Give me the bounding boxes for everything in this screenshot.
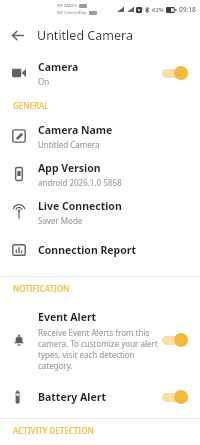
staticText: Battery Alert (38, 390, 106, 404)
staticText: Event Alert (38, 310, 97, 324)
button[interactable]: Battery Alert (0, 380, 200, 414)
staticText: App Version (38, 161, 101, 175)
button[interactable]: Toggle (162, 66, 188, 80)
button[interactable]: Camera (0, 52, 200, 94)
staticText: Saver Mode (38, 215, 83, 226)
staticText: On (38, 76, 50, 87)
button[interactable]: App Version (0, 155, 200, 193)
staticText: GENERAL (13, 100, 49, 111)
staticText: 09:18 (179, 5, 196, 14)
button[interactable]: Back (0, 18, 34, 52)
button[interactable]: Event Alert (0, 300, 200, 380)
staticText: NOTIFICATION (13, 283, 70, 294)
staticText: MY CelcomDigi (57, 10, 87, 16)
button[interactable]: Toggle (162, 390, 188, 404)
button[interactable]: Live Connection (0, 193, 200, 231)
staticText: MY MAXIS (57, 3, 77, 9)
button[interactable]: Toggle (162, 333, 188, 347)
staticText: Camera Name (38, 123, 113, 137)
staticText: Receive Event Alerts from this camera. T… (38, 327, 158, 371)
staticText: Untitled Camera (37, 27, 133, 44)
staticText: android 2026.1.0 5868 (38, 177, 122, 188)
staticText: Live Connection (38, 199, 122, 213)
staticText: 62% (152, 6, 164, 14)
staticText: ACTIVITY DETECTION (13, 425, 94, 436)
button[interactable]: Connection Report (0, 231, 200, 269)
staticText: Connection Report (38, 243, 137, 257)
staticText: Camera (38, 60, 79, 74)
button[interactable]: Camera Name (0, 117, 200, 155)
staticText: Untitled Camera (38, 139, 100, 150)
